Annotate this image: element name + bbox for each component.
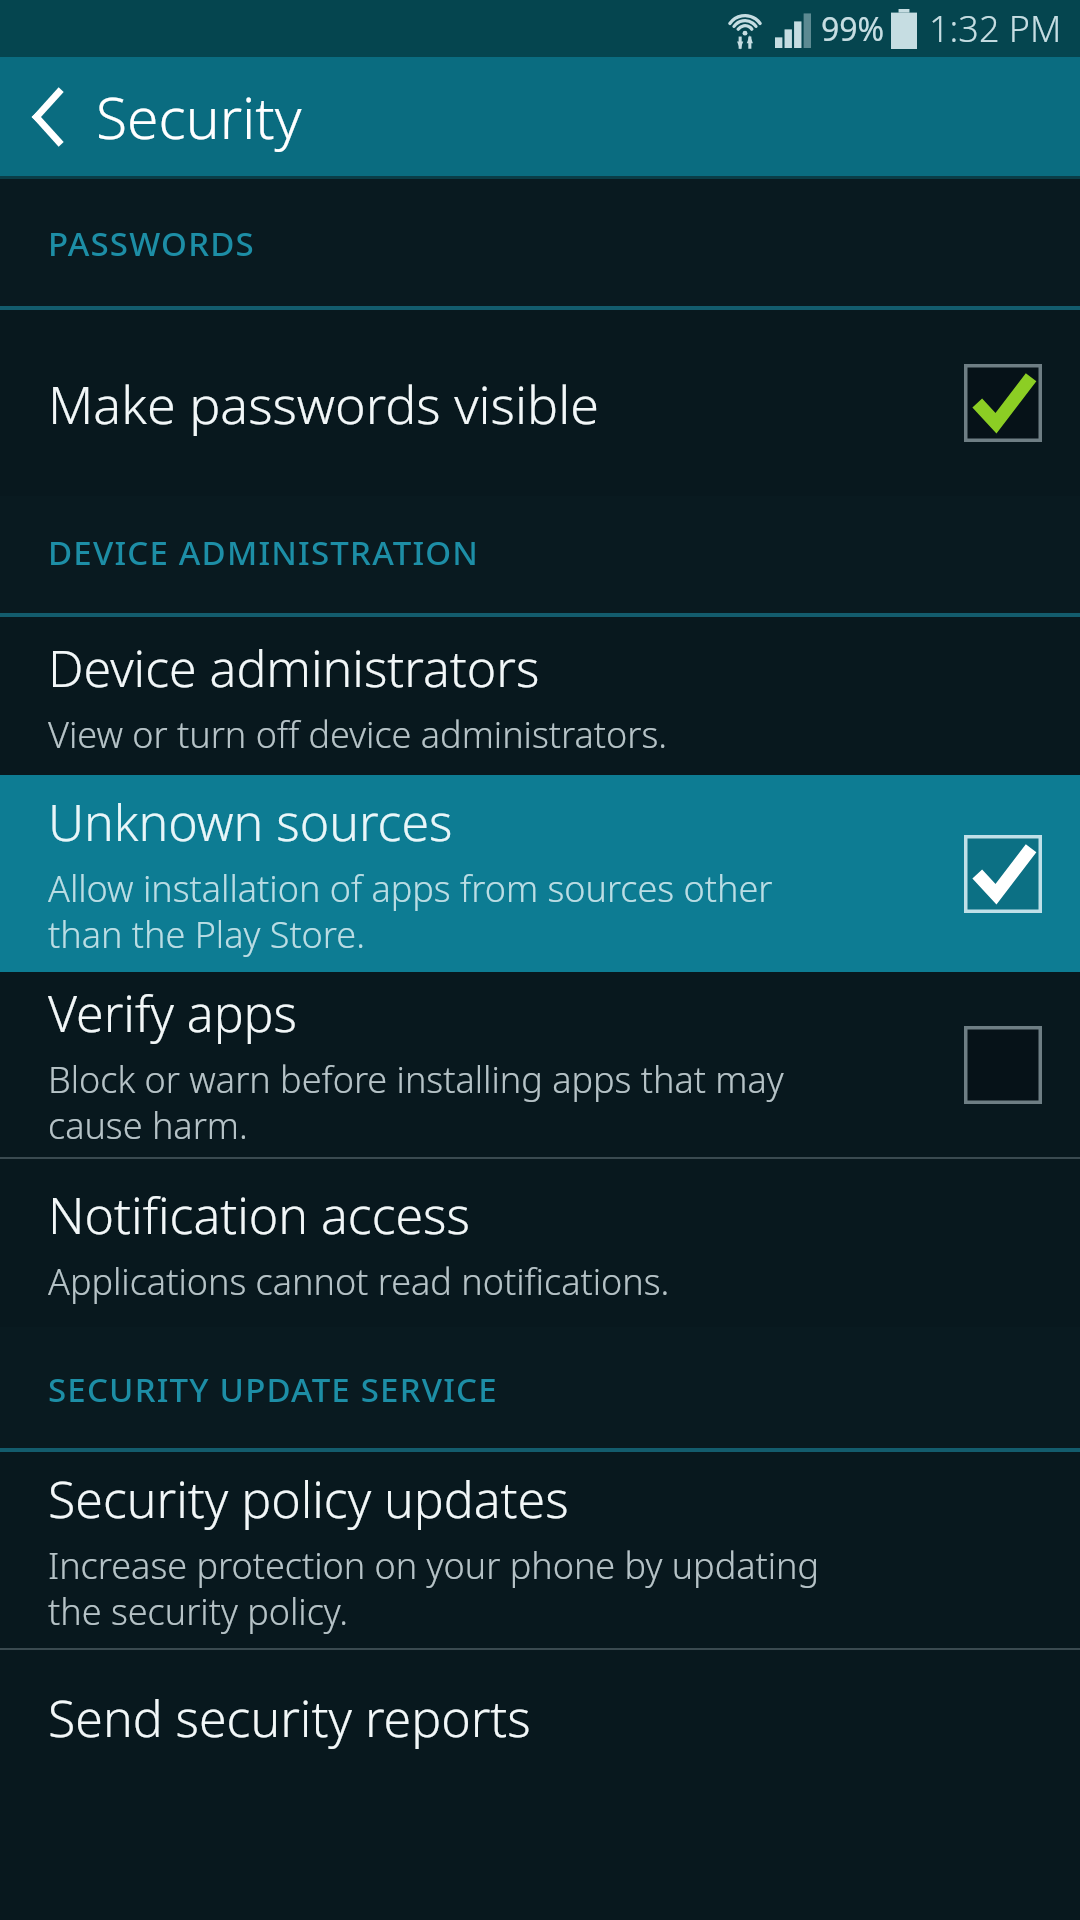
staticText: SECURITY UPDATE SERVICE — [48, 1367, 498, 1412]
staticText: Security policy updates — [48, 1465, 569, 1533]
staticText: Device administrators — [48, 634, 540, 702]
staticText: Send security reports — [48, 1684, 531, 1752]
button[interactable]: Unknown sources — [0, 775, 1080, 972]
button[interactable]: Verify apps — [0, 972, 1080, 1157]
staticText: 1:32 PM — [929, 4, 1062, 53]
staticText: Make passwords visible — [48, 368, 599, 439]
button[interactable]: Make passwords visible — [0, 310, 1080, 496]
staticText: PASSWORDS — [48, 221, 255, 266]
button[interactable]: Back — [0, 57, 96, 176]
staticText: DEVICE ADMINISTRATION — [48, 530, 480, 575]
staticText: Increase protection on your phone by upd… — [48, 1541, 820, 1636]
button[interactable]: Notification access — [0, 1159, 1080, 1327]
staticText: Block or warn before installing apps tha… — [48, 1055, 784, 1150]
button[interactable]: Device administrators — [0, 617, 1080, 775]
staticText: 99% — [821, 7, 885, 51]
staticText: Applications cannot read notifications. — [48, 1257, 670, 1306]
staticText: Verify apps — [48, 979, 297, 1047]
staticText: Notification access — [48, 1181, 470, 1249]
staticText: Allow installation of apps from sources … — [48, 864, 773, 959]
button[interactable]: Send security reports — [0, 1650, 1080, 1920]
staticText: Security — [96, 78, 302, 156]
staticText: View or turn off device administrators. — [48, 710, 668, 759]
button[interactable]: Security policy updates — [0, 1452, 1080, 1648]
staticText: Unknown sources — [48, 788, 453, 856]
